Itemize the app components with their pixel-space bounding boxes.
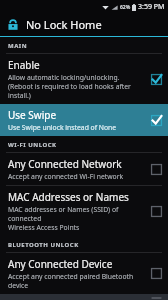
staticText: Use Swipe unlock instead of None [8,123,117,132]
button[interactable]: Any Connected Device [0,253,168,294]
button[interactable]: MAC Addresses or Names [150,205,163,218]
staticText: Enable [8,58,40,72]
button[interactable]: Any Connected Device [150,267,163,280]
staticText: Allow automatic locking/unlocking. (Rebo… [8,73,131,100]
staticText: Use Swipe [8,108,57,122]
button[interactable]: Use Swipe [0,104,168,136]
button[interactable]: Any Connected Network [0,153,168,186]
staticText: No Lock Home [26,17,102,32]
button[interactable]: Any Connected Network [150,163,163,176]
button[interactable]: No Lock Home [0,13,168,36]
staticText: 62% [120,4,131,11]
button[interactable]: MAC Addresses or Names [0,186,168,236]
button[interactable]: Use Swipe [150,114,163,127]
staticText: Any Connected Network [8,157,122,171]
staticText: BLUETOOTH UNLOCK [8,241,79,249]
staticText: Accept any connected paired Bluetooth de… [8,272,134,290]
button[interactable]: MAC Addresses [0,294,168,300]
staticText: Accept any connected Wi-Fi network [8,172,124,181]
button[interactable]: Enable [0,54,168,104]
staticText: 3:59 PM [138,2,165,12]
staticText: MAIN [8,42,28,50]
staticText: MAC Addresses or Names [8,190,129,204]
staticText: MAC addresses or Names (SSID) of connect… [8,205,147,232]
button[interactable]: Enable [150,73,163,86]
staticText: Any Connected Device [8,257,113,271]
staticText: WI-FI UNLOCK [8,141,57,149]
